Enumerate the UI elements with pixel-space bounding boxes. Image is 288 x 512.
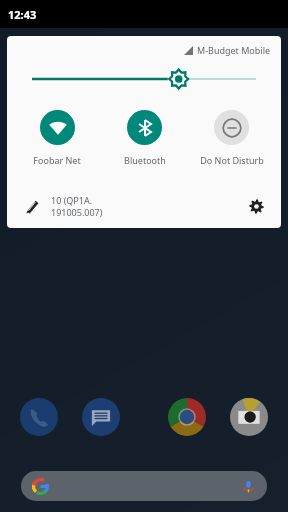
staticText: Bluetooth — [124, 154, 166, 166]
staticText: M-Budget Mobile — [197, 44, 271, 56]
other: Signal strength — [184, 46, 193, 55]
staticText: 191005.007) — [51, 206, 103, 218]
other: Google Search — [33, 479, 48, 494]
button[interactable]: Google Search — [21, 471, 267, 501]
button[interactable]: Bluetooth — [101, 108, 188, 168]
button[interactable]: Phone — [20, 398, 58, 436]
staticText: 12:43 — [8, 7, 37, 22]
button[interactable]: Foobar Net — [13, 108, 101, 168]
button[interactable]: Settings — [243, 193, 269, 219]
button[interactable]: Do Not Disturb — [188, 108, 275, 168]
staticText: Do Not Disturb — [200, 154, 264, 166]
other: Voice search — [242, 480, 255, 493]
staticText: Foobar Net — [33, 154, 81, 166]
button[interactable]: Chrome — [168, 398, 206, 436]
button[interactable]: Edit tiles — [19, 194, 43, 218]
button[interactable]: Brightness — [32, 64, 256, 94]
button[interactable]: Messages — [82, 398, 120, 436]
staticText: 10 (QP1A. — [51, 194, 93, 206]
button[interactable]: Camera — [230, 398, 268, 436]
